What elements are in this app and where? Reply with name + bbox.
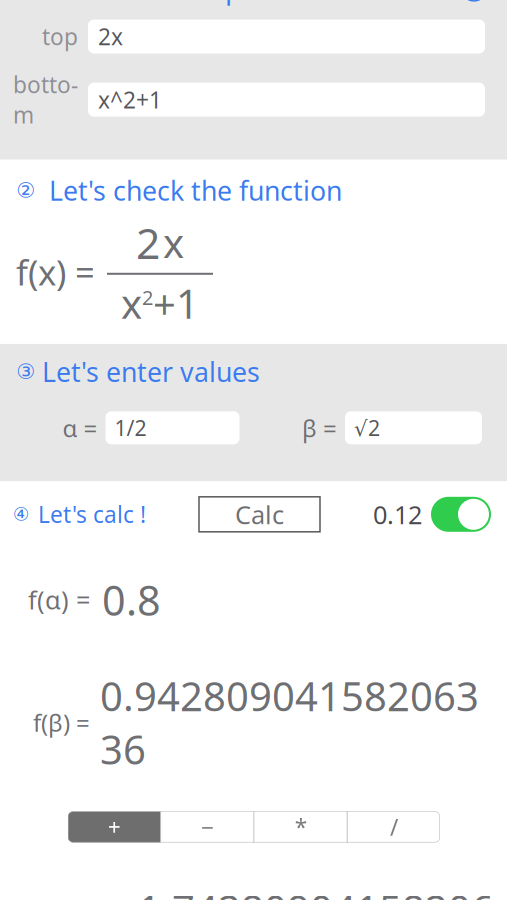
staticText: +1 [153,277,199,330]
button[interactable]: Information [457,0,491,5]
staticText: i [471,0,477,2]
staticText: / [390,812,398,842]
staticText: β = [302,412,337,444]
staticText: 1/2 [114,414,146,442]
staticText: Let's enter values [35,354,260,389]
button[interactable]: / [348,811,440,842]
staticText: f(β) = [33,706,90,738]
staticText: bottom [13,69,78,130]
staticText: 2 [136,214,160,271]
staticText: x [163,216,184,269]
staticText: ③ [16,359,35,384]
staticText: 2 [142,284,153,311]
staticText: Let's check the function [35,173,342,208]
staticText: f(x) = [16,249,95,295]
staticText: * [295,812,307,842]
button[interactable]: Calc [199,497,320,532]
staticText: Let's enter expressions [36,0,349,7]
staticText: 0.12 [373,497,422,531]
staticText: 0.94280904158206336 [100,669,479,775]
staticText: top [42,21,78,52]
button[interactable]: 1/2 [105,411,239,444]
button[interactable]: Toggle high precision [430,495,492,533]
button[interactable]: * [254,811,347,842]
staticText: f(α) = [28,583,90,616]
staticText: 0.8 [102,572,161,627]
button[interactable]: x^2+1 [88,83,485,117]
button[interactable]: + [68,811,160,842]
button[interactable]: 2x [88,19,485,53]
staticText: x^2+1 [98,85,162,115]
staticText: √2 [354,414,380,442]
button[interactable]: √2 [345,411,482,444]
staticText: − [201,812,214,842]
staticText: Let's calc ! [32,499,146,529]
staticText: Calc [235,497,284,531]
staticText: α = [62,412,97,444]
staticText: ② [16,178,35,202]
staticText: x [121,277,142,330]
button[interactable]: − [161,811,253,842]
staticText: 2x [98,21,123,52]
staticText: 1.74280904158206336 [138,882,494,900]
staticText: ④ [13,504,30,525]
staticText: + [108,812,121,842]
